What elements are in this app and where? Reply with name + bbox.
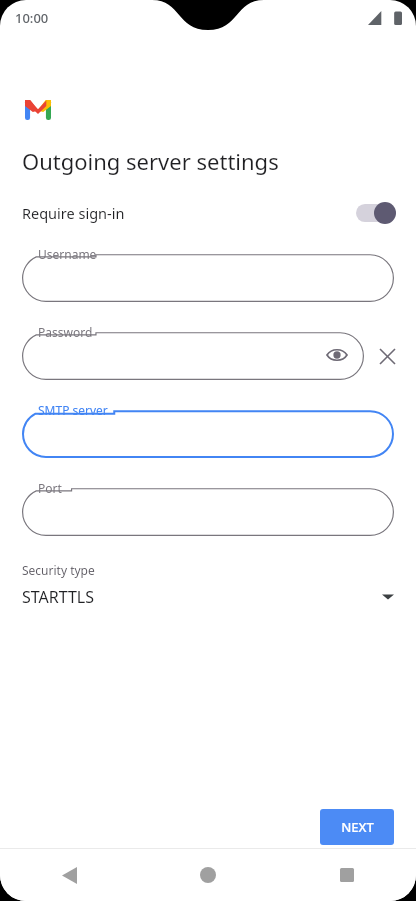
button[interactable]: NEXT (320, 809, 394, 845)
button[interactable]: Show password (324, 342, 350, 368)
staticText: Password (38, 324, 93, 340)
button[interactable]: Port (22, 478, 394, 536)
staticText: Outgoing server settings (22, 146, 279, 176)
staticText: Require sign-in (22, 203, 125, 223)
staticText: Security type (22, 562, 95, 578)
staticText: STARTTLS (22, 586, 95, 608)
staticText: SMTP server (38, 402, 108, 418)
button[interactable]: Password (22, 322, 364, 380)
button[interactable]: Clear (370, 339, 404, 373)
staticText: 10:00 (15, 9, 49, 27)
staticText: NEXT (341, 818, 374, 836)
button[interactable]: Home (138, 849, 277, 901)
button[interactable]: Back (0, 849, 138, 901)
button[interactable]: Require sign-in (0, 196, 416, 230)
button[interactable]: SMTP server (22, 400, 394, 458)
staticText: Username (38, 246, 97, 262)
staticText: Port (38, 480, 62, 496)
button[interactable]: Recent apps (277, 849, 416, 901)
button[interactable]: Security type (0, 562, 416, 608)
other: Require sign-in toggle (356, 202, 396, 224)
button[interactable]: Username (22, 244, 394, 302)
